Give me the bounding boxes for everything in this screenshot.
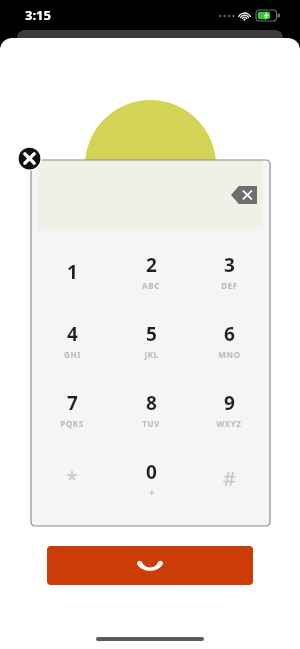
- staticText: #: [223, 465, 236, 492]
- staticText: 6: [224, 321, 235, 347]
- button[interactable]: 4: [34, 306, 110, 375]
- button[interactable]: 1: [34, 237, 110, 306]
- staticText: 3:15: [25, 6, 51, 24]
- staticText: 0: [146, 459, 157, 485]
- button[interactable]: 2: [113, 237, 189, 306]
- staticText: GHI: [64, 349, 81, 360]
- staticText: 1: [67, 259, 78, 285]
- staticText: *: [66, 465, 78, 492]
- button[interactable]: *: [34, 444, 110, 513]
- staticText: JKL: [144, 349, 159, 360]
- button[interactable]: #: [191, 444, 267, 513]
- button[interactable]: 9: [191, 375, 267, 444]
- staticText: WXYZ: [216, 418, 242, 429]
- staticText: ABC: [142, 280, 160, 291]
- staticText: 5: [146, 321, 157, 347]
- staticText: MNO: [218, 349, 241, 360]
- button[interactable]: End call: [47, 546, 253, 585]
- staticText: PQRS: [60, 418, 84, 429]
- staticText: 3: [224, 252, 235, 278]
- staticText: +: [149, 487, 155, 498]
- button[interactable]: Close: [17, 146, 42, 171]
- staticText: 8: [146, 390, 157, 416]
- button[interactable]: 6: [191, 306, 267, 375]
- button[interactable]: 8: [113, 375, 189, 444]
- staticText: 2: [146, 252, 157, 278]
- staticText: 4: [67, 321, 78, 347]
- button[interactable]: 7: [34, 375, 110, 444]
- button[interactable]: 5: [113, 306, 189, 375]
- staticText: DEF: [221, 280, 238, 291]
- button[interactable]: 0: [113, 444, 189, 513]
- staticText: 9: [224, 390, 235, 416]
- button[interactable]: Backspace: [231, 186, 257, 204]
- staticText: 7: [67, 390, 78, 416]
- staticText: TUV: [142, 418, 160, 429]
- button[interactable]: 3: [191, 237, 267, 306]
